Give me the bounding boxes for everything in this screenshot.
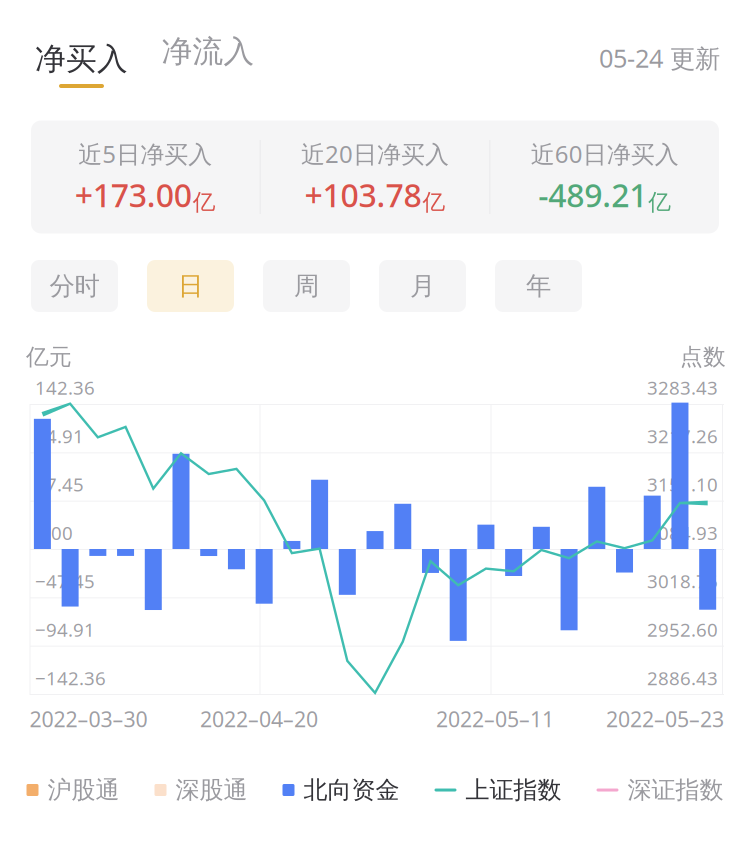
staticText: 亿元 (26, 343, 72, 371)
staticText: 2952.60 (647, 617, 718, 642)
staticText: 点数 (680, 343, 726, 371)
staticText: 年 (526, 270, 551, 301)
staticText: 近5日净买入 (78, 138, 212, 170)
staticText: 近20日净买入 (301, 138, 449, 170)
staticText: 日 (178, 270, 203, 301)
button[interactable]: 深证指数 (596, 775, 723, 805)
staticText: −47.45 (35, 569, 95, 593)
button[interactable]: 年 (495, 260, 582, 312)
button[interactable]: 北向资金 (282, 775, 399, 805)
staticText: 2022–03–30 (29, 705, 147, 733)
button[interactable]: 周 (263, 260, 350, 312)
staticText: 北向资金 (303, 775, 399, 805)
staticText: −142.36 (35, 665, 106, 690)
staticText: -489.21 (538, 174, 647, 216)
staticText: 分时 (49, 270, 99, 301)
staticText: 94.91 (35, 423, 84, 448)
staticText: −94.91 (35, 617, 95, 642)
staticText: 3151.10 (647, 472, 718, 497)
staticText: 3283.43 (647, 375, 718, 400)
staticText: 2886.43 (647, 665, 718, 690)
staticText: 亿 (648, 188, 671, 216)
staticText: 近60日净买入 (531, 138, 679, 170)
button[interactable]: 上证指数 (434, 775, 561, 805)
staticText: +173.00 (75, 174, 192, 216)
staticText: +103.78 (304, 174, 421, 216)
staticText: 0.00 (35, 520, 73, 545)
staticText: 3084.93 (647, 520, 718, 545)
staticText: 亿 (422, 188, 445, 216)
button[interactable]: 净流入 (160, 33, 255, 69)
button[interactable]: 分时 (31, 260, 118, 312)
button[interactable]: 深股通 (154, 775, 247, 805)
staticText: 142.36 (35, 375, 95, 400)
staticText: 3217.26 (647, 423, 718, 448)
staticText: 深证指数 (627, 775, 723, 805)
button[interactable]: 净买入 (34, 41, 129, 88)
staticText: 上证指数 (465, 775, 561, 805)
staticText: 周 (294, 270, 319, 301)
staticText: 05-24 更新 (599, 41, 720, 75)
staticText: 月 (410, 270, 435, 301)
staticText: 2022–05–23 (606, 705, 724, 733)
staticText: 47.45 (35, 472, 84, 497)
staticText: 净流入 (161, 33, 254, 70)
staticText: 2022–05–11 (436, 705, 554, 733)
staticText: 2022–04–20 (200, 705, 318, 733)
button[interactable]: 沪股通 (26, 775, 119, 805)
staticText: 3018.76 (647, 569, 718, 593)
staticText: 亿 (193, 188, 216, 216)
button[interactable]: 月 (379, 260, 466, 312)
staticText: 深股通 (175, 775, 247, 805)
staticText: 净买入 (35, 40, 128, 78)
button[interactable]: 日 (147, 260, 234, 312)
staticText: 沪股通 (47, 775, 119, 805)
